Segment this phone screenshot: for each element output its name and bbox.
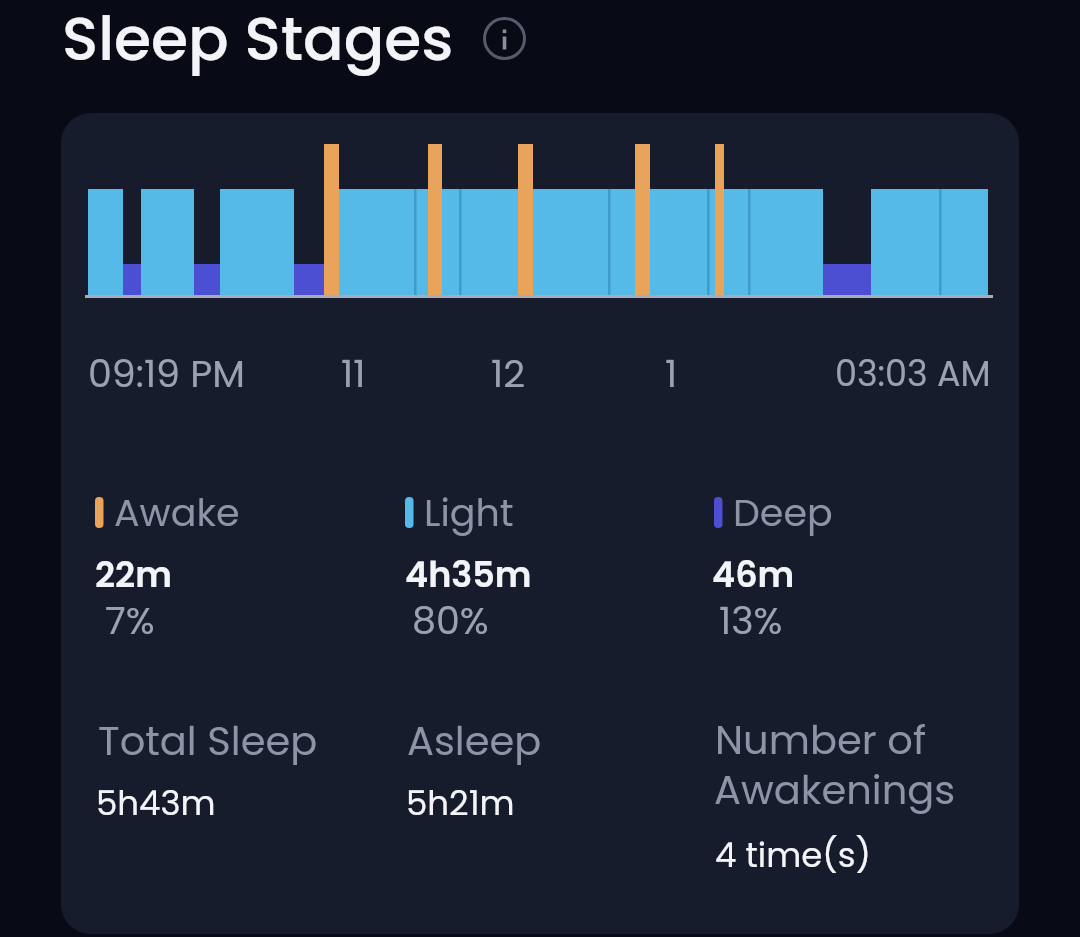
button[interactable]: [61, 113, 1019, 934]
staticText: 13%: [719, 594, 783, 647]
staticText: 5h43m: [96, 779, 216, 827]
staticText: Total Sleep: [98, 713, 318, 769]
staticText: Sleep Stages: [62, 0, 454, 77]
staticText: 12: [491, 347, 526, 400]
staticText: 09:19 PM: [88, 347, 245, 400]
staticText: 03:03 AM: [835, 349, 991, 398]
staticText: 4h35m: [405, 550, 532, 599]
staticText: 22m: [95, 550, 172, 599]
staticText: 7%: [105, 594, 155, 647]
staticText: Deep: [733, 486, 833, 539]
staticText: 5h21m: [406, 779, 515, 827]
staticText: Light: [424, 486, 514, 539]
staticText: 4 time(s): [715, 831, 871, 879]
staticText: 1: [665, 347, 678, 400]
staticText: Awakenings: [714, 762, 956, 818]
staticText: Number of: [715, 712, 927, 768]
staticText: Awake: [114, 486, 240, 539]
staticText: 80%: [412, 594, 489, 647]
staticText: Asleep: [407, 713, 542, 769]
button[interactable]: [482, 16, 527, 61]
staticText: 46m: [712, 550, 795, 599]
staticText: 11: [341, 347, 366, 400]
